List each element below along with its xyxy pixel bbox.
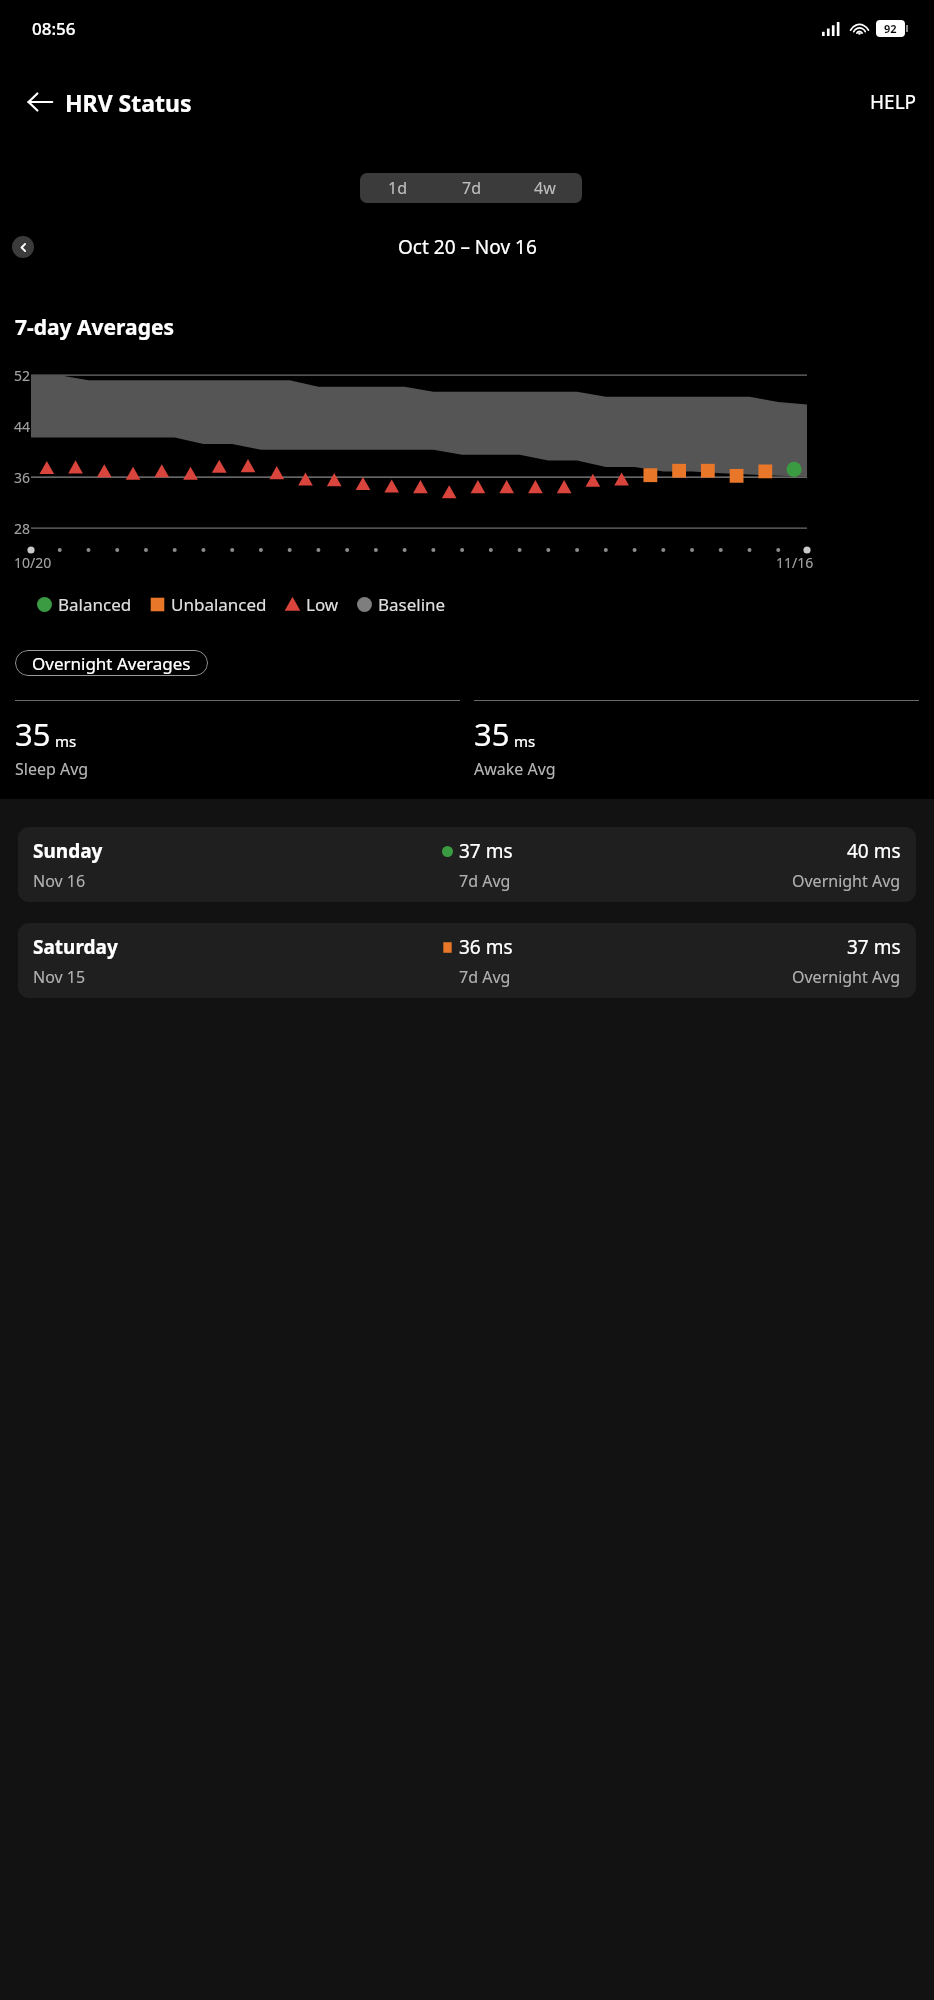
button[interactable]: Saturday (18, 923, 916, 998)
staticText: 4w (534, 177, 556, 199)
staticText: Saturday (33, 934, 118, 960)
staticText: Low (306, 593, 339, 616)
button[interactable]: 4w (508, 173, 582, 203)
staticText: Sunday (33, 838, 103, 864)
staticText: 40 ms (847, 838, 901, 864)
staticText: 1d (388, 177, 407, 199)
staticText: ms (55, 731, 77, 751)
staticText: Overnight Averages (32, 652, 191, 675)
staticText: Sleep Avg (15, 758, 89, 780)
staticText: 92 (884, 21, 897, 36)
staticText: 35 (15, 713, 51, 755)
staticText: Unbalanced (171, 593, 267, 616)
staticText: 52 (14, 366, 31, 385)
staticText: HELP (870, 89, 917, 115)
button[interactable]: Overnight Averages (15, 650, 208, 676)
staticText: Baseline (378, 593, 446, 616)
staticText: Awake Avg (474, 758, 556, 780)
staticText: HRV Status (65, 87, 192, 118)
staticText: 28 (14, 519, 31, 538)
staticText: 44 (14, 417, 31, 436)
staticText: Overnight Avg (792, 966, 901, 988)
staticText: Balanced (58, 593, 132, 616)
staticText: 7d (462, 177, 481, 199)
staticText: ms (514, 731, 536, 751)
staticText: 7-day Averages (15, 313, 174, 342)
staticText: 7d Avg (459, 870, 511, 892)
staticText: Overnight Avg (792, 870, 901, 892)
staticText: 7d Avg (459, 966, 511, 988)
button[interactable]: 7d (434, 173, 508, 203)
staticText: 11/16 (776, 553, 814, 572)
button[interactable]: Sunday (18, 827, 916, 902)
staticText: 10/20 (14, 553, 52, 572)
staticText: 37 ms (459, 838, 513, 864)
staticText: 36 (14, 468, 31, 487)
staticText: 35 (474, 713, 510, 755)
staticText: Nov 15 (33, 966, 86, 988)
button[interactable]: Previous period (12, 236, 34, 258)
button[interactable]: Back (12, 74, 68, 130)
button[interactable]: HELP (853, 79, 934, 125)
staticText: Oct 20 – Nov 16 (398, 234, 537, 260)
button[interactable]: 1d (360, 173, 434, 203)
staticText: 37 ms (847, 934, 901, 960)
staticText: 08:56 (32, 17, 76, 40)
staticText: 36 ms (459, 934, 513, 960)
staticText: Nov 16 (33, 870, 86, 892)
